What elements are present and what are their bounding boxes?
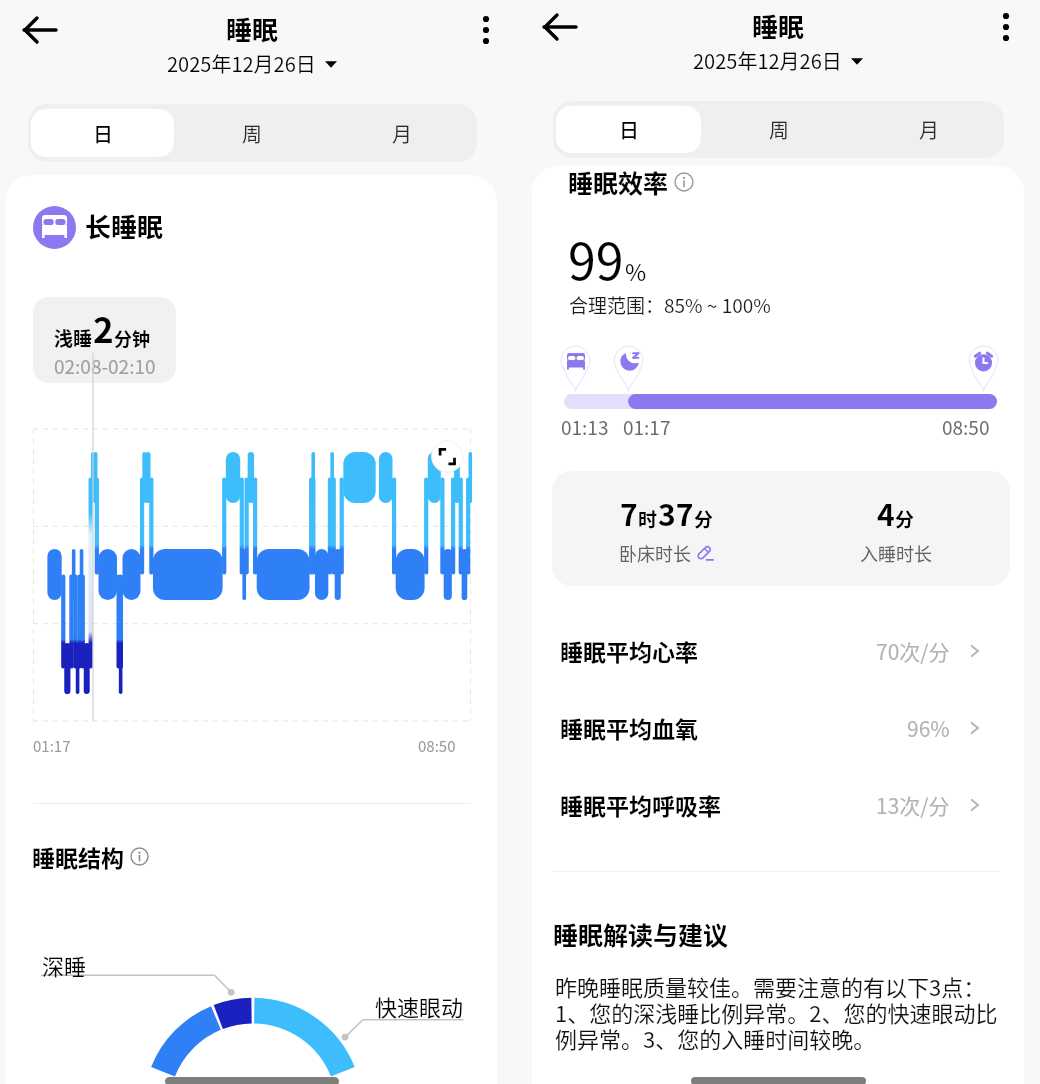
staticText: 37	[658, 491, 694, 534]
staticText: 2	[93, 302, 114, 353]
staticText: 月	[392, 119, 412, 148]
button[interactable]: 睡眠平均血氧	[560, 689, 984, 766]
staticText: 昨晚睡眠质量较佳。需要注意的有以下3点： 1、您的深浅睡比例异常。2、您的快速眼…	[555, 970, 1003, 1054]
staticText: 日	[93, 119, 113, 148]
staticText: 08:50	[942, 413, 990, 441]
button[interactable]: More options	[464, 8, 508, 52]
staticText: 7	[620, 491, 638, 534]
staticText: 01:13	[561, 413, 609, 441]
staticText: 睡眠平均心率	[560, 634, 698, 667]
staticText: 日	[619, 115, 639, 144]
button[interactable]: 周	[177, 104, 327, 162]
button[interactable]: 日	[31, 109, 174, 157]
staticText: 01:17	[33, 735, 71, 757]
button[interactable]: 月	[854, 101, 1004, 158]
staticText: 睡眠平均呼吸率	[560, 788, 721, 821]
staticText: 4	[877, 491, 895, 534]
staticText: 睡眠	[752, 7, 805, 45]
staticText: 08:50	[418, 735, 456, 757]
button[interactable]: Back	[16, 6, 64, 54]
staticText: 02:08-02:10	[54, 352, 156, 380]
staticText: 睡眠结构	[32, 840, 124, 873]
staticText: 2025年12月26日	[167, 49, 316, 78]
button[interactable]: 2025年12月26日	[167, 49, 337, 78]
staticText: 周	[242, 119, 262, 148]
button[interactable]: Back	[536, 3, 584, 51]
staticText: 长睡眠	[85, 207, 164, 245]
staticText: 睡眠效率	[568, 166, 669, 200]
staticText: 13次/分	[876, 790, 950, 820]
button[interactable]: 2025年12月26日	[693, 46, 863, 75]
button[interactable]: 睡眠平均心率	[560, 612, 984, 689]
staticText: 合理范围：85% ~ 100%	[569, 291, 771, 319]
staticText: 深睡	[42, 949, 87, 981]
staticText: 70次/分	[876, 636, 950, 666]
staticText: 99	[568, 222, 624, 294]
staticText: 分	[895, 505, 915, 533]
staticText: 时	[638, 505, 658, 533]
button[interactable]: 周	[704, 101, 854, 158]
staticText: 2025年12月26日	[693, 46, 842, 75]
staticText: %	[625, 254, 647, 287]
button[interactable]: 月	[327, 104, 477, 162]
button[interactable]: 睡眠平均呼吸率	[560, 766, 984, 843]
staticText: 96%	[907, 713, 950, 743]
staticText: 月	[919, 115, 939, 144]
staticText: 睡眠平均血氧	[560, 711, 698, 744]
staticText: 分	[694, 505, 714, 533]
staticText: 入睡时长	[860, 540, 932, 566]
staticText: 快速眼动	[375, 990, 464, 1022]
button[interactable]: More options	[984, 5, 1028, 49]
staticText: 周	[769, 115, 789, 144]
staticText: 卧床时长	[619, 540, 691, 566]
staticText: 01:17	[623, 413, 671, 441]
staticText: 睡眠解读与建议	[553, 916, 729, 952]
staticText: 睡眠	[226, 10, 279, 48]
staticText: 分钟	[114, 325, 150, 351]
staticText: 浅睡	[54, 324, 93, 352]
button[interactable]: 日	[556, 106, 701, 153]
